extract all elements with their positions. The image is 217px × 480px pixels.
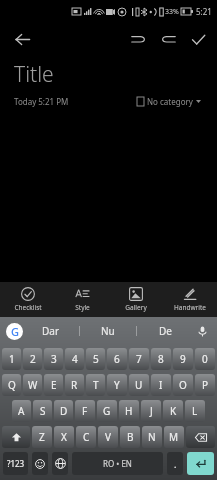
button[interactable]: Nu <box>80 317 136 345</box>
button[interactable]: Period <box>167 452 183 475</box>
button[interactable]: Style <box>55 282 109 317</box>
button[interactable]: Language <box>52 452 68 475</box>
button[interactable]: 6 <box>107 348 127 370</box>
staticText: I <box>159 378 163 392</box>
staticText: ?123 <box>7 458 25 469</box>
button[interactable]: R <box>65 374 84 396</box>
button[interactable]: Y <box>107 374 127 396</box>
staticText: F <box>82 404 88 418</box>
staticText: RO • EN <box>103 458 132 469</box>
button[interactable]: Voice input <box>193 322 211 340</box>
staticText: V <box>105 430 111 444</box>
staticText: 5 <box>93 352 99 366</box>
button[interactable]: 1 <box>2 348 21 370</box>
staticText: W <box>28 378 38 392</box>
staticText: L <box>192 404 198 418</box>
button[interactable]: Save <box>183 24 213 54</box>
staticText: Dar <box>42 324 60 338</box>
button[interactable]: C <box>76 426 96 448</box>
staticText: K <box>170 404 177 418</box>
button[interactable]: Undo <box>123 24 153 54</box>
staticText: De <box>159 324 172 338</box>
staticText: Nu <box>101 324 115 338</box>
button[interactable]: Space <box>72 452 163 475</box>
button[interactable]: G <box>97 400 117 422</box>
staticText: . <box>174 458 177 470</box>
button[interactable]: P <box>195 374 215 396</box>
button[interactable]: A <box>12 400 31 422</box>
button[interactable]: O <box>173 374 193 396</box>
staticText: T <box>93 378 99 392</box>
button[interactable]: Google <box>6 323 23 340</box>
button[interactable]: Z <box>32 426 52 448</box>
staticText: 33% <box>165 7 179 17</box>
button[interactable]: 2 <box>23 348 42 370</box>
staticText: 5:21 <box>196 6 212 17</box>
button[interactable]: N <box>142 426 162 448</box>
staticText: D <box>60 404 68 418</box>
button[interactable]: B <box>120 426 140 448</box>
button[interactable]: Redo <box>153 24 183 54</box>
staticText: Gallery <box>125 303 147 312</box>
staticText: U <box>135 378 143 392</box>
button[interactable]: U <box>129 374 149 396</box>
button[interactable]: Back <box>6 23 38 55</box>
button[interactable]: J <box>141 400 161 422</box>
staticText: Checklist <box>14 303 42 312</box>
button[interactable]: 7 <box>129 348 149 370</box>
staticText: G <box>103 404 111 418</box>
button[interactable]: Checklist <box>0 282 55 317</box>
staticText: 2 <box>30 352 36 366</box>
button[interactable]: 4 <box>65 348 84 370</box>
button[interactable]: Backspace <box>186 426 215 448</box>
button[interactable]: Handwrite <box>163 282 217 317</box>
staticText: 8 <box>158 352 164 366</box>
staticText: A <box>18 404 25 418</box>
button[interactable]: Shift <box>2 426 30 448</box>
button[interactable]: S <box>33 400 52 422</box>
button[interactable]: 3 <box>44 348 63 370</box>
button[interactable]: De <box>137 317 193 345</box>
staticText: B <box>127 430 134 444</box>
staticText: No category <box>147 96 193 107</box>
staticText: Q <box>8 378 16 392</box>
staticText: S <box>40 404 46 418</box>
button[interactable]: E <box>44 374 63 396</box>
staticText: G <box>11 324 19 339</box>
button[interactable]: ?123 <box>3 452 28 475</box>
button[interactable]: D <box>54 400 73 422</box>
staticText: Title <box>14 60 54 89</box>
staticText: 3 <box>51 352 57 366</box>
button[interactable]: I <box>151 374 171 396</box>
button[interactable]: Emoji <box>32 452 48 475</box>
button[interactable]: 0 <box>195 348 215 370</box>
button[interactable]: Dar <box>23 317 79 345</box>
button[interactable]: 8 <box>151 348 171 370</box>
staticText: Style <box>75 303 90 312</box>
button[interactable]: L <box>185 400 205 422</box>
button[interactable]: V <box>98 426 118 448</box>
button[interactable]: H <box>119 400 139 422</box>
staticText: 4 <box>72 352 78 366</box>
button[interactable]: K <box>163 400 183 422</box>
staticText: 6 <box>114 352 120 366</box>
staticText: R <box>71 378 78 392</box>
button[interactable]: 9 <box>173 348 193 370</box>
staticText: 1 <box>9 352 15 366</box>
button[interactable]: 5 <box>86 348 105 370</box>
button[interactable]: Enter <box>187 452 214 475</box>
button[interactable]: F <box>75 400 95 422</box>
staticText: Today 5:21 PM <box>14 96 69 107</box>
staticText: P <box>202 378 209 392</box>
button[interactable]: Q <box>2 374 21 396</box>
button[interactable]: No category <box>135 94 203 109</box>
button[interactable]: X <box>54 426 74 448</box>
staticText: Z <box>39 430 45 444</box>
button[interactable]: W <box>23 374 42 396</box>
button[interactable]: M <box>164 426 184 448</box>
button[interactable]: Gallery <box>109 282 163 317</box>
button[interactable]: T <box>86 374 105 396</box>
staticText: Y <box>114 378 120 392</box>
staticText: N <box>148 430 156 444</box>
staticText: H <box>125 404 133 418</box>
